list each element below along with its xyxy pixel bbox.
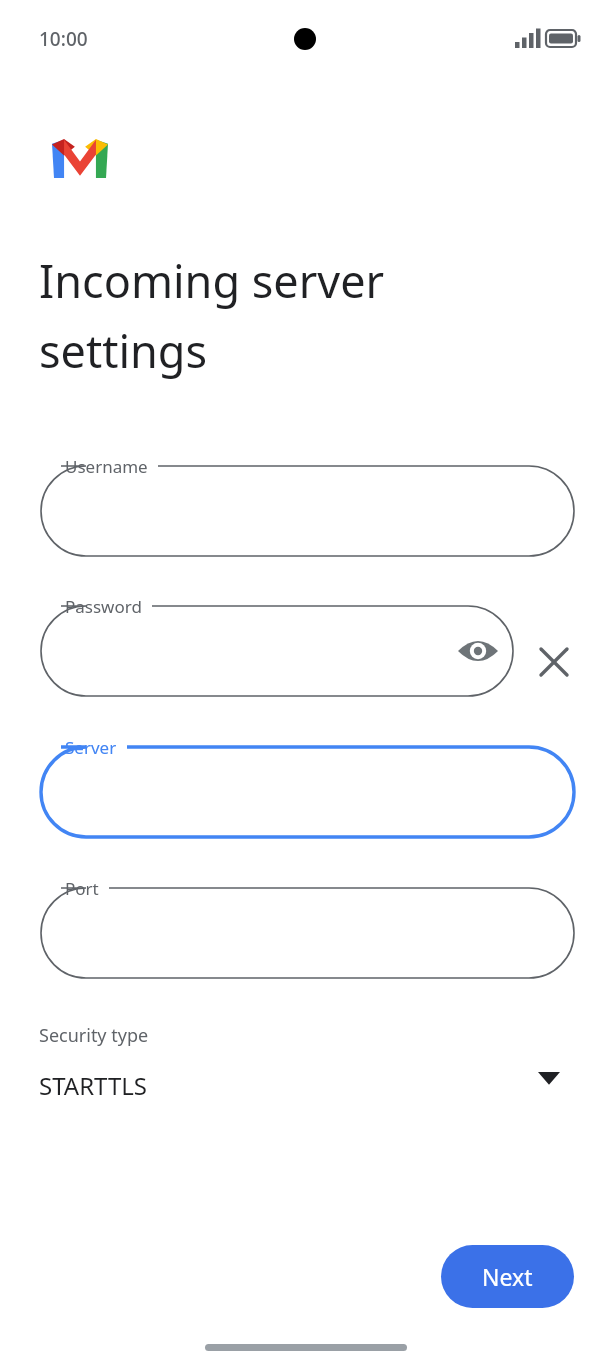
button[interactable]: Security type STARTTLS xyxy=(40,1055,574,1111)
button[interactable]: Next xyxy=(441,1245,574,1308)
button[interactable]: Username field xyxy=(41,466,574,556)
button[interactable]: Show password xyxy=(454,627,502,675)
button[interactable]: Server field xyxy=(41,747,574,837)
button[interactable]: Port field xyxy=(41,888,574,978)
button[interactable]: Password field xyxy=(41,606,513,696)
button[interactable]: Clear password xyxy=(530,638,578,686)
